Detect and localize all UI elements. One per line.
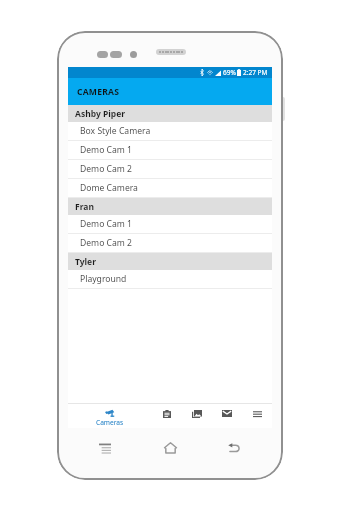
button[interactable]: Demo Cam 1 bbox=[68, 141, 272, 160]
button[interactable]: Fran bbox=[68, 198, 272, 215]
button[interactable]: Demo Cam 2 bbox=[68, 160, 272, 179]
staticText: Demo Cam 1 bbox=[80, 144, 133, 156]
staticText: Demo Cam 2 bbox=[80, 237, 133, 249]
staticText: 69% bbox=[223, 68, 236, 77]
staticText: 2:27 PM bbox=[243, 68, 268, 77]
button[interactable]: Playground bbox=[68, 270, 272, 289]
button[interactable]: Demo Cam 2 bbox=[68, 234, 272, 253]
button[interactable]: Cameras bbox=[88, 409, 132, 427]
staticText: Demo Cam 1 bbox=[80, 218, 133, 230]
staticText: Demo Cam 2 bbox=[80, 163, 133, 175]
button[interactable]: Tyler bbox=[68, 253, 272, 270]
button[interactable]: Reports bbox=[156, 407, 177, 420]
button[interactable]: Recent apps bbox=[92, 437, 118, 459]
staticText: Fran bbox=[75, 201, 94, 213]
button[interactable]: Ashby Piper bbox=[68, 105, 272, 122]
button[interactable]: Messages bbox=[216, 407, 237, 420]
staticText: Box Style Camera bbox=[80, 125, 151, 137]
staticText: Playground bbox=[80, 273, 127, 285]
button[interactable]: Home bbox=[157, 437, 183, 459]
staticText: CAMERAS bbox=[77, 86, 120, 98]
button[interactable]: Box Style Camera bbox=[68, 122, 272, 141]
button[interactable]: Back bbox=[221, 437, 247, 459]
button[interactable]: Dome Camera bbox=[68, 179, 272, 198]
staticText: Ashby Piper bbox=[75, 108, 126, 120]
button[interactable]: Gallery bbox=[186, 407, 207, 420]
staticText: Dome Camera bbox=[80, 182, 138, 194]
staticText: Cameras bbox=[96, 418, 124, 427]
staticText: Tyler bbox=[75, 256, 96, 268]
button[interactable]: Demo Cam 1 bbox=[68, 215, 272, 234]
button[interactable]: More options bbox=[247, 407, 268, 420]
